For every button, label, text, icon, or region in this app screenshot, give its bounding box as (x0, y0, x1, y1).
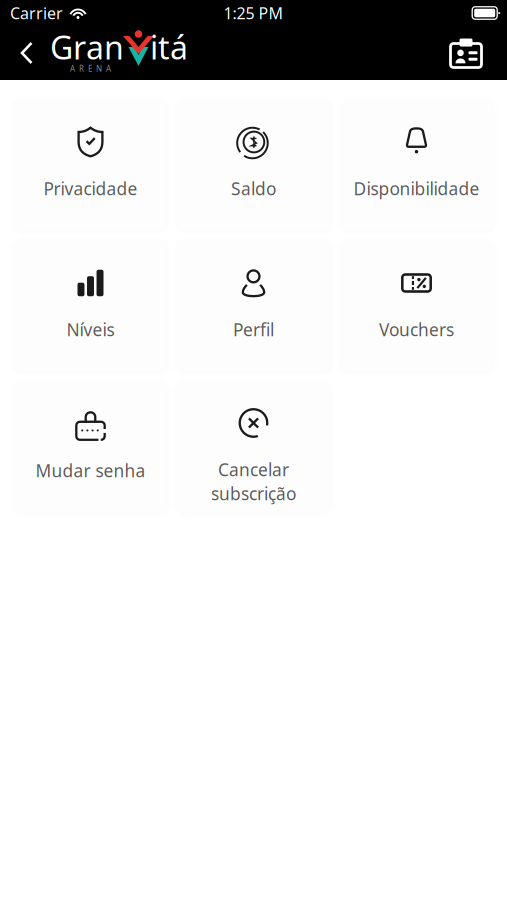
staticText: Níveis (66, 318, 114, 341)
staticText: Mudar senha (35, 459, 145, 482)
staticText: itá (150, 26, 188, 68)
button[interactable]: Privacidade (14, 100, 166, 230)
staticText: Carrier (10, 2, 63, 24)
button[interactable]: Perfil (177, 241, 329, 371)
staticText: Perfil (233, 318, 274, 341)
staticText: Privacidade (43, 177, 137, 200)
staticText: 1:25 PM (223, 2, 283, 24)
staticText: subscrição (211, 482, 296, 505)
staticText: Saldo (231, 177, 276, 200)
button[interactable]: Back (13, 27, 41, 79)
button[interactable]: Vouchers (340, 241, 492, 371)
button[interactable]: Níveis (14, 241, 166, 371)
button[interactable]: Disponibilidade (340, 100, 492, 230)
staticText: A R E N A (70, 63, 111, 74)
button[interactable]: Saldo (177, 100, 329, 230)
button[interactable]: Mudar senha (14, 382, 166, 512)
staticText: Disponibilidade (353, 177, 479, 200)
button[interactable]: Cancelar (177, 382, 329, 512)
button[interactable]: Membership card (439, 27, 493, 79)
staticText: Vouchers (379, 318, 454, 341)
staticText: Cancelar (218, 458, 289, 481)
staticText: Gran (50, 26, 124, 68)
